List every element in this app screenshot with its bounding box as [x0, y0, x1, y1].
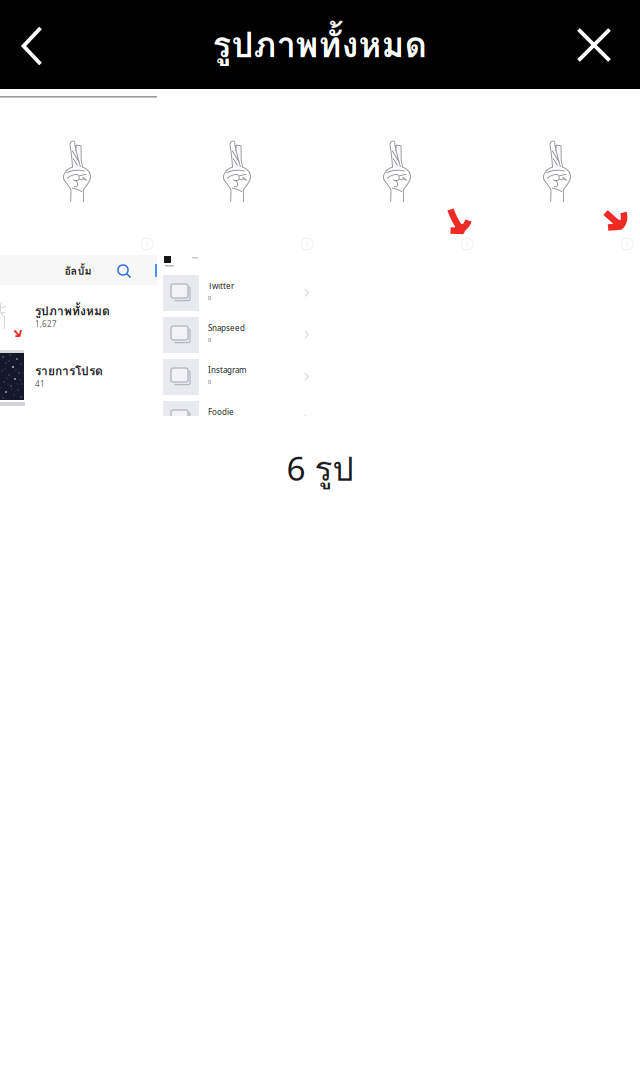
- staticText: Foodie: [208, 407, 234, 417]
- button[interactable]: Close: [562, 0, 626, 89]
- staticText: อัลบั้ม: [64, 263, 91, 279]
- staticText: 41: [35, 379, 45, 389]
- button[interactable]: Snapseed: [163, 314, 320, 356]
- button[interactable]: Search: [118, 265, 132, 279]
- button[interactable]: Twitter: [163, 272, 320, 314]
- staticText: Twitter: [208, 281, 234, 291]
- staticText: Instagram: [208, 365, 246, 375]
- button[interactable]: Foodie: [163, 398, 320, 440]
- button[interactable]: Instagram: [163, 356, 320, 398]
- staticText: รูปภาพทั้งหมด: [35, 302, 110, 320]
- staticText: รายการโปรด: [35, 362, 103, 380]
- staticText: 1,627: [35, 319, 57, 329]
- staticText: 0: [208, 378, 211, 386]
- staticText: รูปภาพทั้งหมด: [212, 18, 427, 72]
- staticText: Snapseed: [208, 323, 245, 333]
- staticText: 6 รูป: [286, 443, 353, 495]
- staticText: 0: [208, 336, 211, 344]
- button[interactable]: Back: [0, 1, 64, 90]
- staticText: 0: [208, 294, 211, 302]
